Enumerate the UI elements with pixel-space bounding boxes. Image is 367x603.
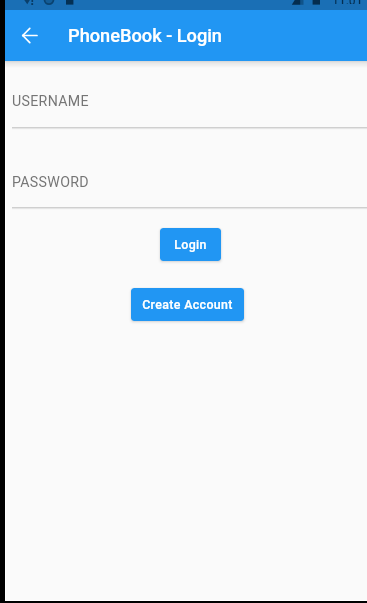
staticText: 11:01: [332, 0, 363, 4]
staticText: USERNAME: [12, 93, 89, 110]
staticText: PhoneBook - Login: [68, 25, 222, 46]
button[interactable]: [12, 166, 367, 210]
staticText: Login: [174, 237, 207, 252]
staticText: Create Account: [142, 297, 233, 312]
button[interactable]: Login: [160, 228, 221, 261]
button[interactable]: Back: [5, 10, 54, 61]
button[interactable]: [12, 86, 367, 130]
staticText: PASSWORD: [12, 174, 89, 191]
button[interactable]: Create Account: [131, 288, 244, 321]
